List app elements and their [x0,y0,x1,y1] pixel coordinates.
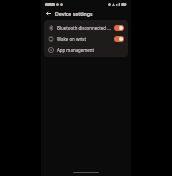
button[interactable] [114,36,124,42]
button[interactable]: Wake on wrist [44,33,128,44]
staticText: Bluetooth disconnected reminder [57,25,112,31]
button[interactable] [114,25,124,31]
staticText: Wake on wrist [57,36,112,42]
staticText: App management [57,47,124,53]
button[interactable]: Bluetooth disconnected reminder [44,22,128,33]
button[interactable]: Back [44,9,53,18]
staticText: Device settings [55,10,93,17]
button[interactable]: App management [44,44,128,55]
